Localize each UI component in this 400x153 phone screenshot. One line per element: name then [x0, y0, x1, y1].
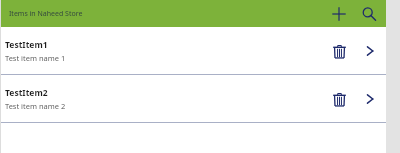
button[interactable]: Delete: [326, 38, 352, 64]
button[interactable]: TestItem2: [0, 75, 386, 122]
button[interactable]: TestItem1: [0, 27, 386, 74]
staticText: Items in Naheed Store: [9, 9, 83, 19]
staticText: Test item name 1: [5, 53, 66, 63]
button[interactable]: Open details: [358, 87, 382, 111]
button[interactable]: Delete: [326, 86, 352, 112]
button[interactable]: Search: [358, 3, 380, 25]
button[interactable]: Add item: [328, 3, 350, 25]
staticText: Test item name 2: [5, 101, 66, 111]
staticText: TestItem1: [5, 39, 48, 51]
staticText: TestItem2: [5, 87, 48, 99]
button[interactable]: Open details: [358, 39, 382, 63]
